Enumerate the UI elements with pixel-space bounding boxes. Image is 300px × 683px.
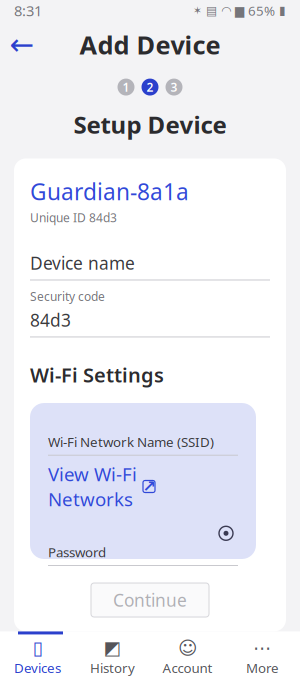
staticText: Continue [113,588,187,611]
staticText: ▤ [206,4,217,17]
staticText: Guardian-8a1a [30,176,189,206]
button[interactable]: ⋯ [225,640,300,676]
staticText: ▯ [32,637,42,659]
staticText: More [246,659,279,677]
staticText: Devices [14,659,61,677]
staticText: Password [48,543,106,561]
staticText: ⋯ [253,637,272,659]
staticText: View Wi-Fi Networks [48,462,137,511]
staticText: ◠ [221,4,231,17]
staticText: Wi-Fi Settings [30,361,164,388]
staticText: 2 [146,79,153,95]
button[interactable]: Go back [105,631,194,655]
staticText: Wi-Fi Network Name (SSID) [48,433,214,451]
staticText: ▮ [279,4,286,17]
staticText: History [90,659,135,677]
button[interactable]: Show password [214,523,238,543]
staticText: ← [9,28,34,61]
button[interactable]: Continue [91,583,209,617]
button[interactable]: ◩ [75,640,150,676]
staticText: Setup Device [73,109,226,140]
staticText: ✶ [193,4,202,17]
staticText: 84d3 [30,308,71,331]
button[interactable]: Back [0,25,44,65]
staticText: Unique ID 84d3 [30,209,117,225]
staticText: Account [162,659,212,677]
staticText: 65% [248,2,275,19]
staticText: Add Device [79,28,220,61]
staticText: ↗ [142,477,155,496]
staticText: ▆ [235,4,244,17]
staticText: Device name [30,251,135,274]
staticText: 1 [122,79,129,95]
button[interactable]: View Wi-Fi Networks [48,456,238,511]
button[interactable]: ☺ [150,640,225,676]
staticText: 8:31 [14,1,42,20]
button[interactable]: ▯ [0,640,75,676]
staticText: ◩ [103,637,121,659]
staticText: ☺ [178,637,197,659]
staticText: Go back [115,631,184,654]
staticText: 3 [170,79,177,95]
staticText: Security code [30,288,105,304]
